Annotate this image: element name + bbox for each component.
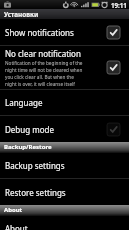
- button[interactable]: Toggle checkbox: [107, 26, 120, 39]
- staticText: Restore settings: [5, 187, 66, 198]
- staticText: Backup/Restore: [4, 143, 52, 151]
- staticText: About: [5, 223, 28, 230]
- button[interactable]: Toggle checkbox: [107, 123, 120, 136]
- staticText: No clear notification: [5, 48, 81, 59]
- button[interactable]: Show notifications: [0, 19, 129, 45]
- button[interactable]: Restore settings: [0, 179, 129, 205]
- button[interactable]: About: [0, 216, 129, 230]
- button[interactable]: No clear notification: [0, 46, 129, 89]
- button[interactable]: Debug mode: [0, 116, 129, 142]
- staticText: 19:11: [111, 1, 127, 9]
- staticText: Debug mode: [5, 124, 54, 135]
- staticText: Notification of the beginning of the nig…: [5, 60, 83, 88]
- staticText: Backup settings: [5, 160, 65, 171]
- button[interactable]: Toggle checkbox: [107, 61, 120, 74]
- button[interactable]: Backup settings: [0, 153, 129, 178]
- staticText: Language: [5, 97, 43, 108]
- staticText: Show notifications: [5, 27, 74, 38]
- button[interactable]: Language: [0, 90, 129, 115]
- staticText: About: [4, 206, 23, 214]
- staticText: Установки: [4, 10, 39, 19]
